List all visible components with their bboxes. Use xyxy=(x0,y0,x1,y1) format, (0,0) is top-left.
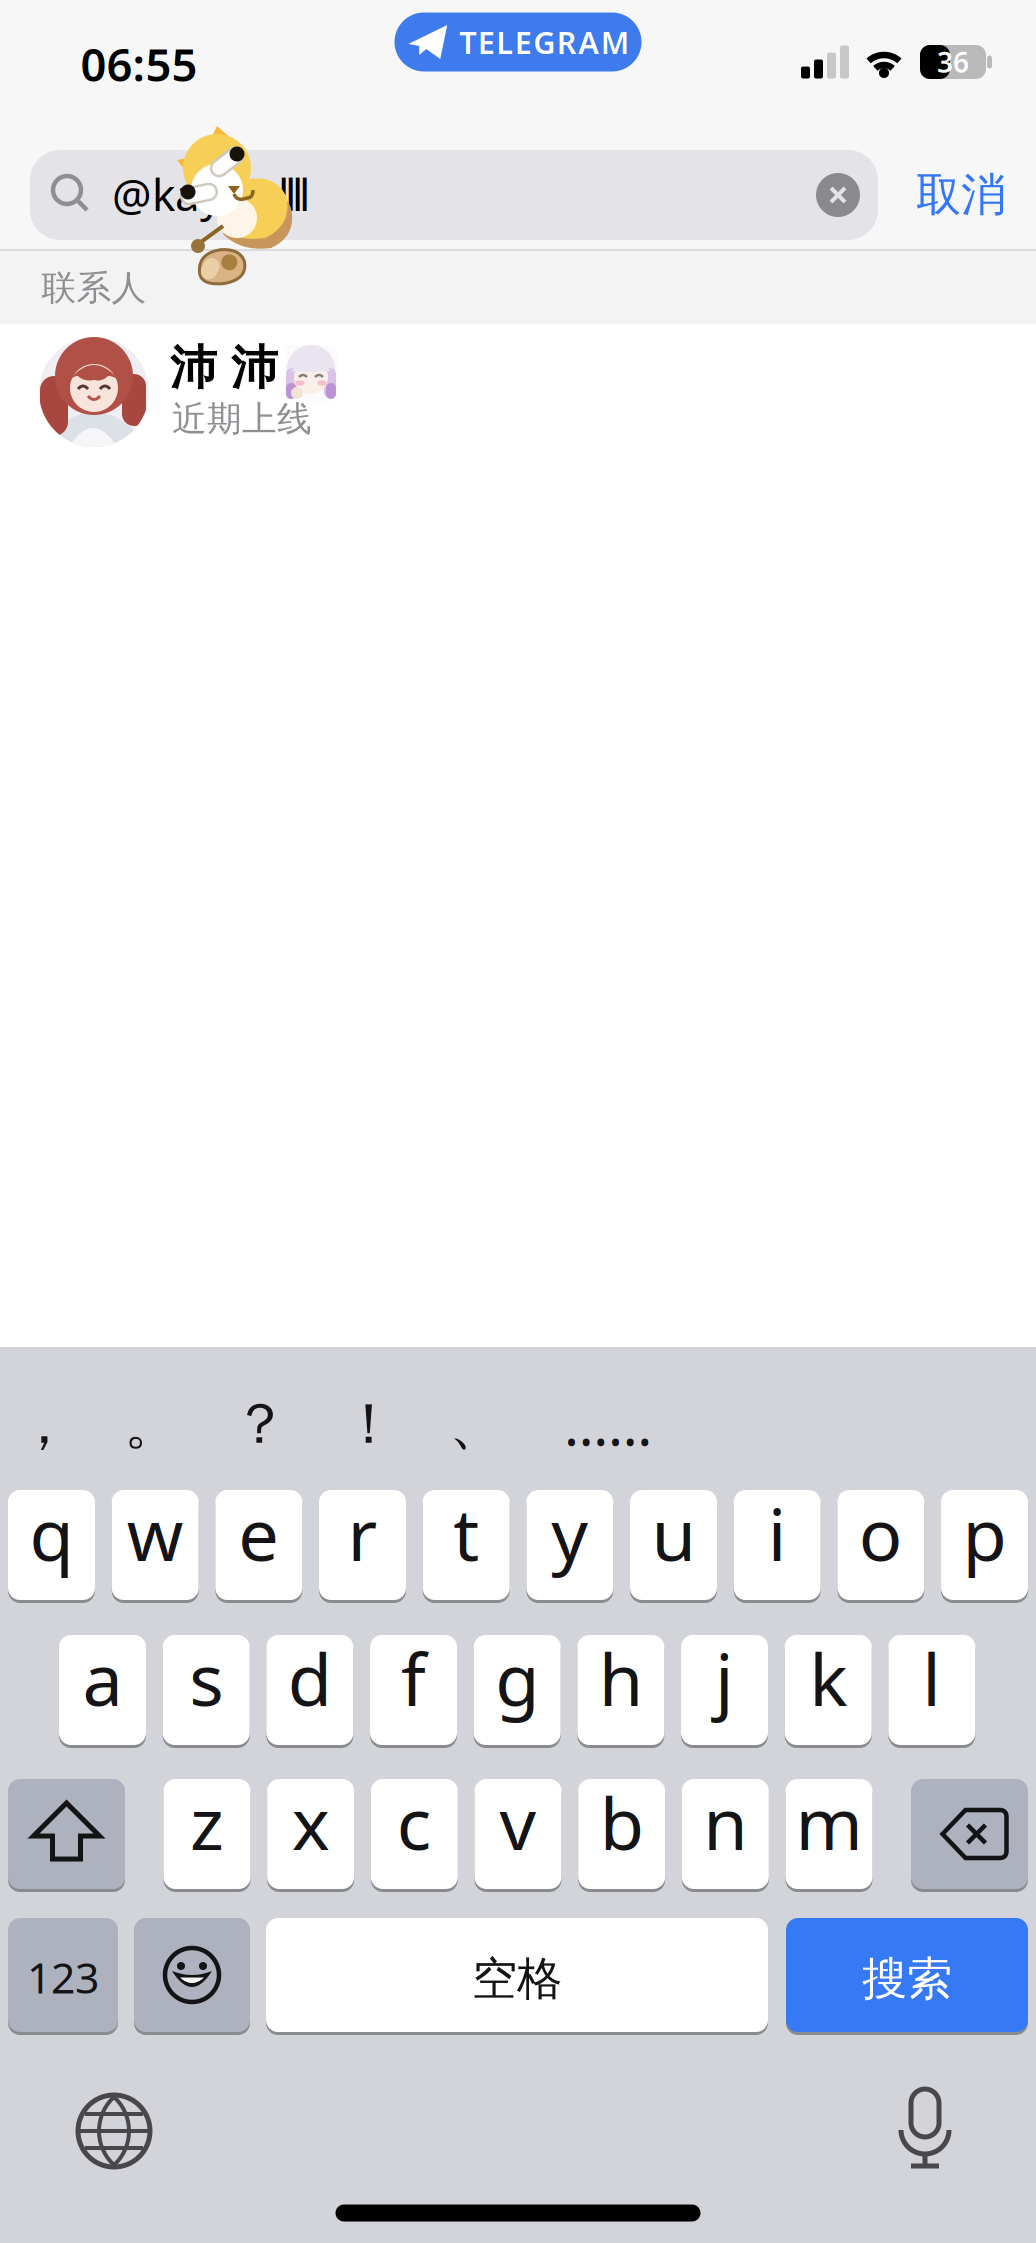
button[interactable]: Dictation xyxy=(885,2088,965,2172)
staticText: s xyxy=(189,1630,223,1726)
staticText: n xyxy=(703,1774,747,1870)
button[interactable]: 123 xyxy=(8,1918,118,2032)
staticText: ， xyxy=(16,1390,72,1458)
staticText: l xyxy=(922,1630,941,1726)
button[interactable]: ？ xyxy=(232,1390,288,1458)
staticText: 36 xyxy=(937,43,969,81)
staticText: f xyxy=(401,1630,426,1726)
button[interactable]: q xyxy=(8,1490,95,1600)
staticText: g xyxy=(495,1630,539,1726)
button[interactable]: Search field xyxy=(30,150,878,240)
button[interactable]: i xyxy=(734,1490,821,1600)
staticText: e xyxy=(238,1485,279,1581)
staticText: k xyxy=(809,1630,847,1726)
button[interactable]: 沛 沛 xyxy=(0,327,1036,457)
staticText: a xyxy=(82,1630,122,1726)
button[interactable]: Return to Telegram xyxy=(394,12,641,71)
staticText: b xyxy=(600,1774,644,1870)
button[interactable]: c xyxy=(371,1779,458,1889)
button[interactable]: t xyxy=(423,1490,510,1600)
staticText: t xyxy=(453,1485,479,1581)
button[interactable]: u xyxy=(630,1490,717,1600)
staticText: 取消 xyxy=(916,167,1006,223)
staticText: ？ xyxy=(232,1390,288,1458)
button[interactable]: v xyxy=(474,1779,561,1889)
staticText: x xyxy=(292,1774,330,1870)
button[interactable]: 、 xyxy=(449,1390,505,1458)
button[interactable]: d xyxy=(266,1635,353,1745)
button[interactable]: x xyxy=(267,1779,354,1889)
staticText: y xyxy=(551,1485,588,1581)
staticText: j xyxy=(715,1630,734,1726)
button[interactable]: s xyxy=(163,1635,250,1745)
staticText: i xyxy=(768,1485,787,1581)
staticText: v xyxy=(499,1774,536,1870)
button[interactable]: 。 xyxy=(124,1390,180,1458)
staticText: 06:55 xyxy=(80,34,197,94)
button[interactable]: z xyxy=(163,1779,250,1889)
button[interactable]: ！ xyxy=(341,1390,397,1458)
staticText: r xyxy=(347,1485,377,1581)
button[interactable]: w xyxy=(112,1490,199,1600)
staticText: …… xyxy=(564,1387,652,1461)
button[interactable]: …… xyxy=(564,1387,652,1461)
staticText: 搜索 xyxy=(862,1951,952,2007)
button[interactable]: 空格 xyxy=(266,1918,768,2032)
staticText: 沛 沛 xyxy=(170,339,278,397)
button[interactable]: Clear search text xyxy=(816,173,860,217)
staticText: w xyxy=(127,1485,184,1581)
button[interactable]: Next keyboard xyxy=(78,2095,150,2167)
button[interactable]: e xyxy=(215,1490,302,1600)
button[interactable]: Shift xyxy=(8,1779,125,1889)
staticText: llll xyxy=(278,165,310,223)
button[interactable]: b xyxy=(578,1779,665,1889)
staticText: 、 xyxy=(449,1390,505,1458)
staticText: m xyxy=(795,1774,862,1870)
button[interactable]: m xyxy=(785,1779,872,1889)
staticText: d xyxy=(288,1630,332,1726)
button[interactable]: p xyxy=(941,1490,1028,1600)
button[interactable]: y xyxy=(526,1490,613,1600)
staticText: p xyxy=(962,1485,1006,1581)
button[interactable]: Emoji xyxy=(134,1918,250,2032)
staticText: @kay xyxy=(112,165,222,223)
button[interactable]: ， xyxy=(16,1390,72,1458)
staticText: 。 xyxy=(124,1390,180,1458)
staticText: o xyxy=(859,1485,903,1581)
staticText: 近期上线 xyxy=(172,398,312,440)
staticText: 123 xyxy=(27,1949,99,2005)
staticText: h xyxy=(599,1630,643,1726)
button[interactable]: k xyxy=(785,1635,872,1745)
button[interactable]: a xyxy=(59,1635,146,1745)
staticText: z xyxy=(190,1774,224,1870)
button[interactable]: g xyxy=(474,1635,561,1745)
button[interactable]: 搜索 xyxy=(786,1918,1028,2032)
button[interactable]: 取消 xyxy=(916,167,1006,223)
button[interactable]: l xyxy=(888,1635,975,1745)
staticText: 空格 xyxy=(472,1951,562,2007)
button[interactable]: n xyxy=(682,1779,769,1889)
staticText: c xyxy=(397,1774,432,1870)
button[interactable]: f xyxy=(370,1635,457,1745)
button[interactable]: Delete xyxy=(911,1779,1028,1889)
staticText: ！ xyxy=(341,1390,397,1458)
button[interactable]: j xyxy=(681,1635,768,1745)
staticText: 联系人 xyxy=(41,267,146,309)
staticText: q xyxy=(29,1485,73,1581)
button[interactable]: h xyxy=(577,1635,664,1745)
button[interactable]: r xyxy=(319,1490,406,1600)
staticText: TELEGRAM xyxy=(459,22,629,62)
staticText: u xyxy=(651,1485,695,1581)
button[interactable]: o xyxy=(837,1490,924,1600)
